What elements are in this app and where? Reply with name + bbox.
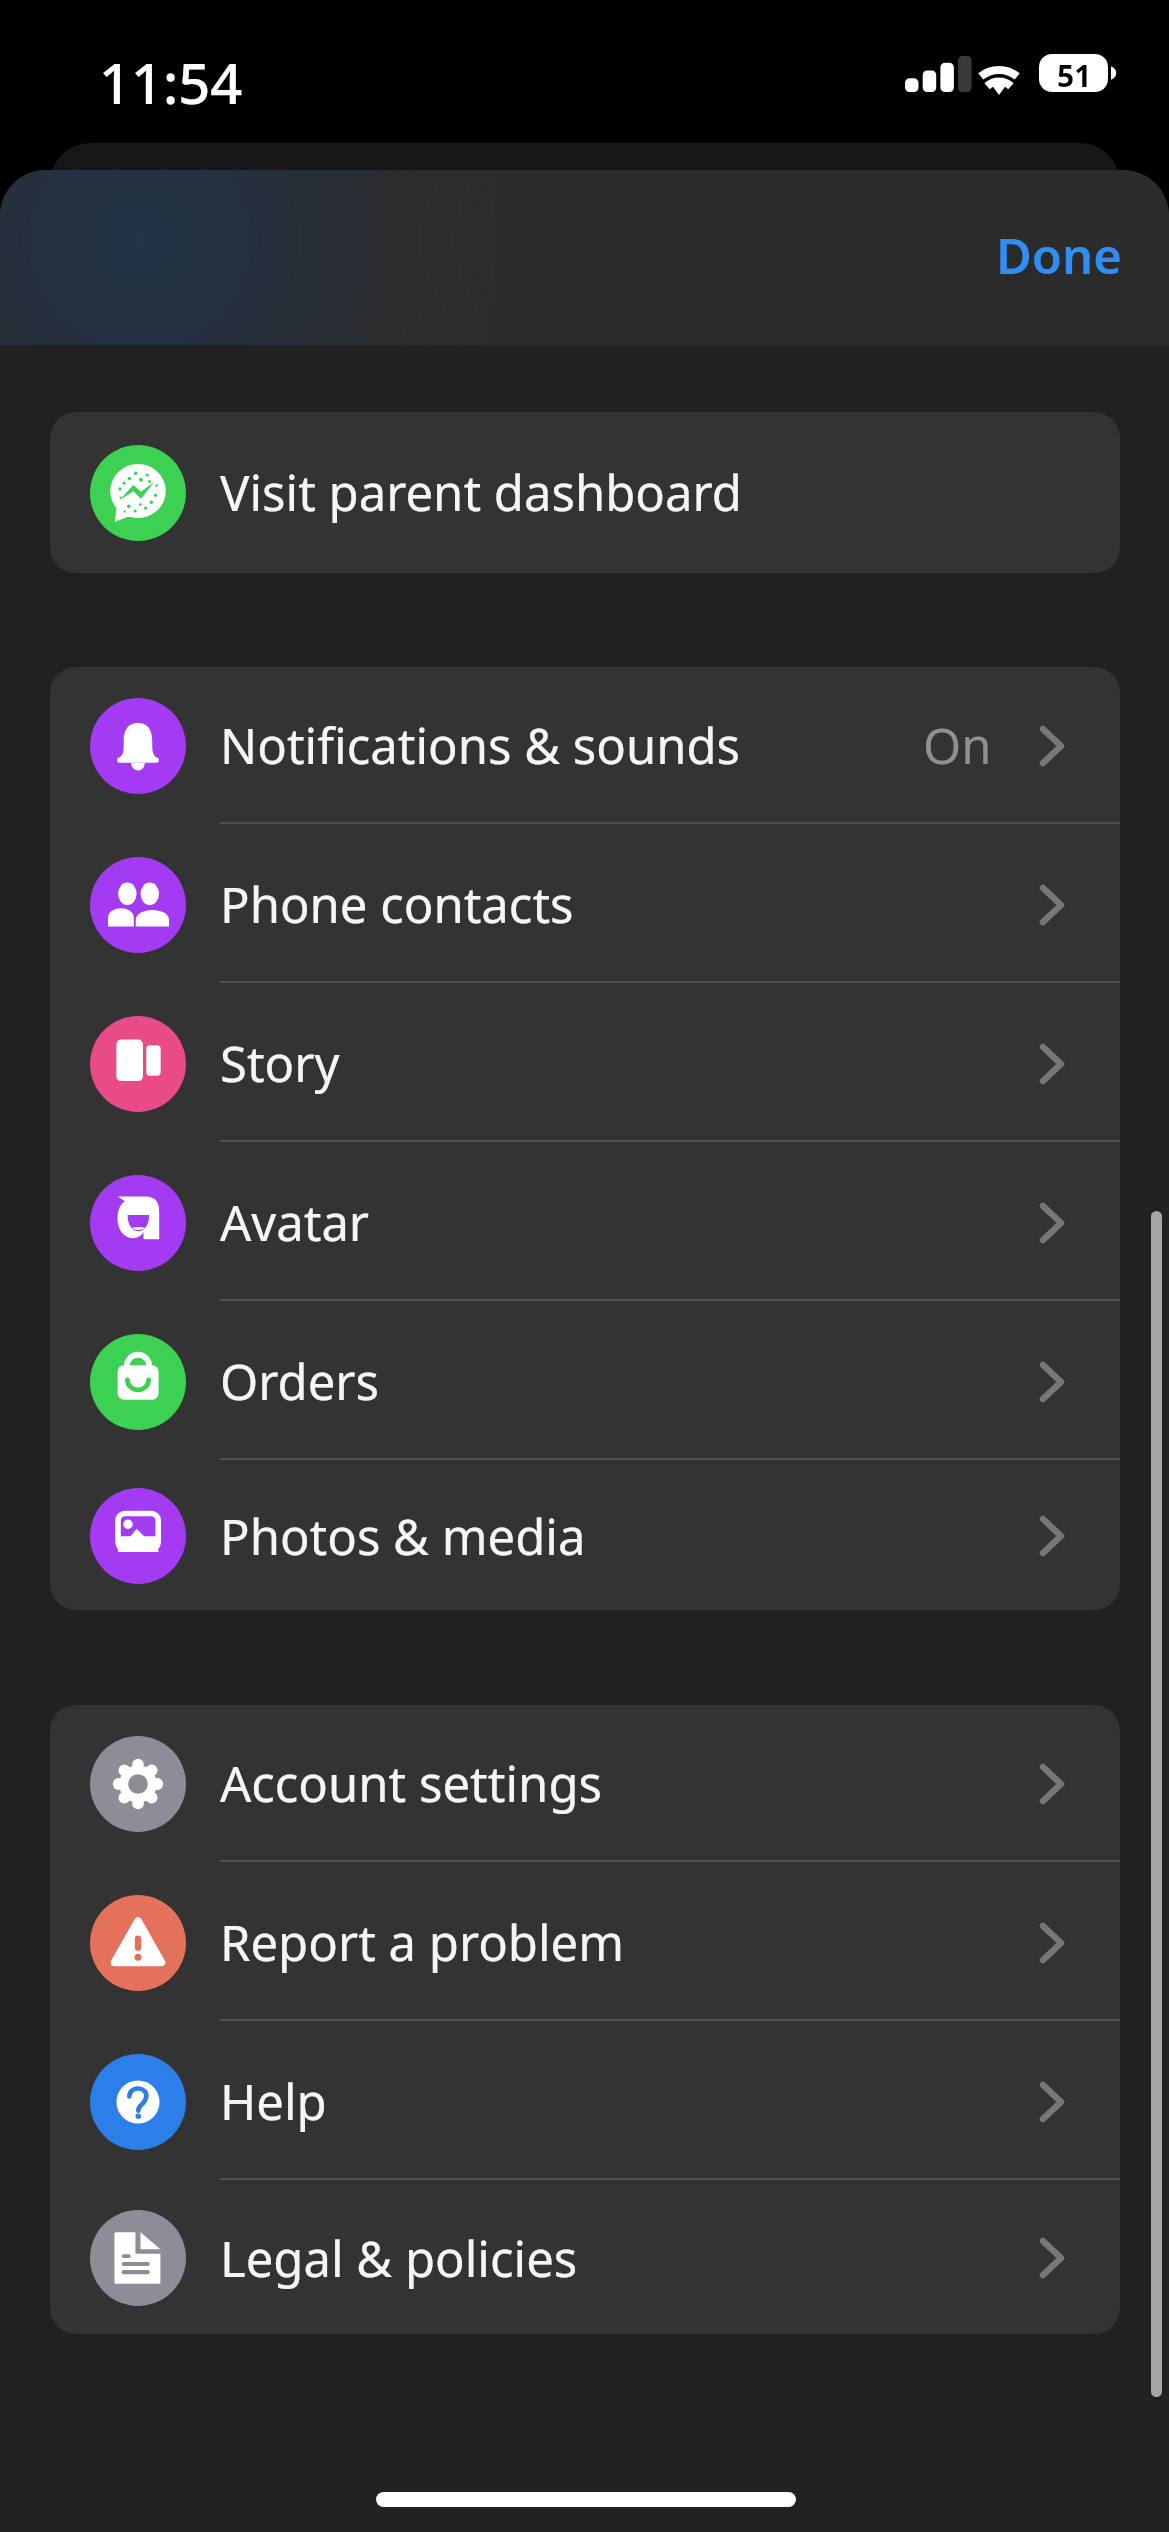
staticText: Done bbox=[996, 222, 1123, 289]
button[interactable]: Photos & media bbox=[50, 1462, 1120, 1610]
button[interactable]: Done bbox=[958, 204, 1161, 307]
staticText: Avatar bbox=[220, 1189, 370, 1256]
staticText: Help bbox=[220, 2068, 327, 2135]
button[interactable]: Notifications & sounds bbox=[50, 667, 1120, 824]
staticText: Visit parent dashboard bbox=[220, 459, 742, 526]
staticText: 51 bbox=[1057, 55, 1092, 96]
button[interactable]: Report a problem bbox=[50, 1864, 1120, 2021]
staticText: Notifications & sounds bbox=[220, 712, 741, 779]
button[interactable]: Account settings bbox=[50, 1705, 1120, 1862]
staticText: On bbox=[923, 712, 992, 779]
button[interactable]: Avatar bbox=[50, 1144, 1120, 1301]
button[interactable]: Help bbox=[50, 2023, 1120, 2180]
staticText: Account settings bbox=[220, 1750, 603, 1817]
staticText: Orders bbox=[220, 1348, 380, 1415]
staticText: Phone contacts bbox=[220, 871, 574, 938]
staticText: Report a problem bbox=[220, 1909, 625, 1976]
button[interactable]: Legal & policies bbox=[50, 2182, 1120, 2334]
staticText: Story bbox=[220, 1030, 340, 1097]
button[interactable]: Visit parent dashboard bbox=[50, 412, 1120, 573]
staticText: Legal & policies bbox=[220, 2225, 578, 2292]
button[interactable]: Story bbox=[50, 985, 1120, 1142]
button[interactable]: Orders bbox=[50, 1303, 1120, 1460]
button[interactable]: Phone contacts bbox=[50, 826, 1120, 983]
staticText: Photos & media bbox=[220, 1503, 586, 1570]
staticText: 11:54 bbox=[99, 44, 243, 120]
